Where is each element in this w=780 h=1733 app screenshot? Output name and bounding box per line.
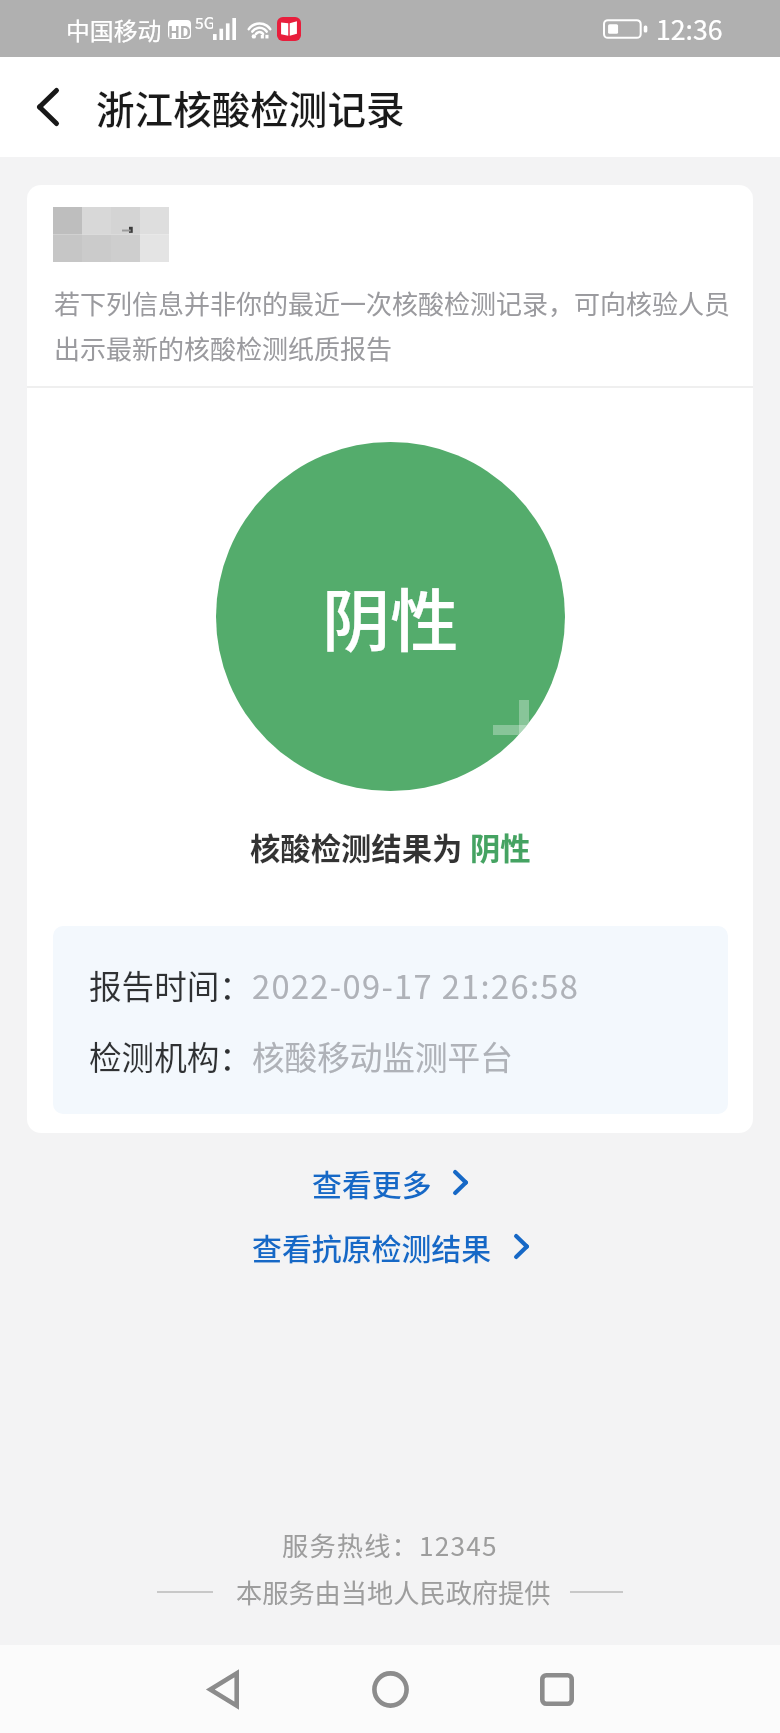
button[interactable]: Recents (517, 1649, 597, 1729)
staticText: HD (168, 20, 191, 39)
staticText: 5G (195, 11, 213, 34)
button[interactable]: 查看抗原检测结果 (226, 1216, 555, 1277)
staticText: 核酸检测结果为 (250, 825, 470, 869)
staticText: 12:36 (656, 9, 723, 48)
staticText: 查看抗原检测结果 (252, 1225, 492, 1268)
staticText: 中国移动 (66, 12, 162, 47)
button[interactable]: Back (183, 1649, 263, 1729)
staticText: 检测机构： (89, 1032, 252, 1079)
button[interactable]: Back (0, 57, 95, 157)
button[interactable]: Home (350, 1649, 430, 1729)
staticText: 若下列信息并非你的最近一次核酸检测记录，可向核验人员出示最新的核酸检测纸质报告 (54, 284, 733, 367)
staticText: 服务热线：12345 (282, 1526, 498, 1564)
staticText: 本服务由当地人民政府提供 (236, 1573, 551, 1611)
staticText: 阴性 (470, 825, 531, 869)
staticText: 报告时间： (89, 961, 252, 1008)
staticText: 浙江核酸检测记录 (96, 79, 405, 135)
button[interactable]: 查看更多 (286, 1152, 494, 1213)
staticText: 查看更多 (312, 1161, 432, 1204)
staticText: 阴性 (322, 567, 459, 666)
staticText: 核酸移动监测平台 (252, 1032, 513, 1079)
staticText: 2022-09-17 21:26:58 (252, 961, 580, 1008)
